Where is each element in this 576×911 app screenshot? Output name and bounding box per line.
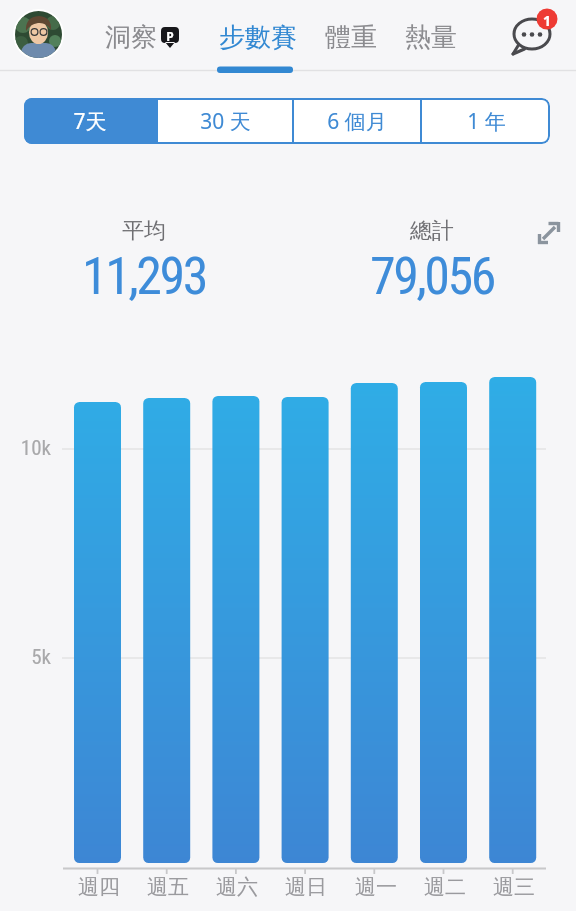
button[interactable]	[534, 218, 564, 248]
staticText: 30 天	[200, 107, 251, 136]
staticText: 平均	[98, 217, 190, 245]
button[interactable]: 1	[506, 6, 562, 58]
button[interactable]	[13, 9, 64, 60]
button[interactable]: 30 天	[158, 98, 292, 144]
button[interactable]: 步數賽	[218, 21, 298, 54]
button[interactable]: 6 個月	[294, 98, 420, 144]
button[interactable]: 1 年	[422, 98, 550, 144]
staticText: 週二	[410, 874, 480, 900]
button[interactable]: 體重	[324, 21, 378, 54]
staticText: 5k	[11, 645, 51, 670]
staticText: 11,293	[64, 246, 224, 307]
staticText: 1 年	[467, 107, 506, 136]
staticText: P	[161, 28, 179, 44]
staticText: 週一	[341, 874, 411, 900]
staticText: 週六	[202, 874, 272, 900]
button[interactable]: 7天	[24, 98, 156, 144]
button[interactable]: P	[161, 27, 179, 48]
staticText: 週四	[64, 874, 134, 900]
staticText: 週五	[133, 874, 203, 900]
staticText: 7天	[73, 107, 107, 136]
button[interactable]: 熱量	[404, 21, 458, 54]
button[interactable]: 洞察	[104, 21, 158, 54]
staticText: 79,056	[352, 246, 512, 307]
staticText: 10k	[11, 436, 51, 461]
staticText: 1	[537, 11, 557, 30]
staticText: 6 個月	[327, 107, 387, 136]
staticText: 週日	[271, 874, 341, 900]
staticText: 總計	[386, 217, 478, 245]
staticText: 週三	[479, 874, 549, 900]
